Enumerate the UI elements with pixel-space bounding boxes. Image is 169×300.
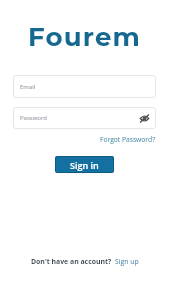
button[interactable]: Sign in <box>56 157 113 172</box>
button[interactable]: Sign up <box>115 257 139 266</box>
button[interactable]: Email <box>13 75 156 98</box>
button[interactable]: Forgot Password? <box>100 135 156 144</box>
button[interactable]: Show password <box>137 111 151 125</box>
staticText: Password <box>20 114 48 122</box>
staticText: Don't have an account? <box>31 257 112 266</box>
staticText: Fourem <box>28 21 142 53</box>
button[interactable]: Password <box>13 107 156 129</box>
staticText: Email <box>20 83 36 91</box>
staticText: Sign in <box>70 159 99 171</box>
